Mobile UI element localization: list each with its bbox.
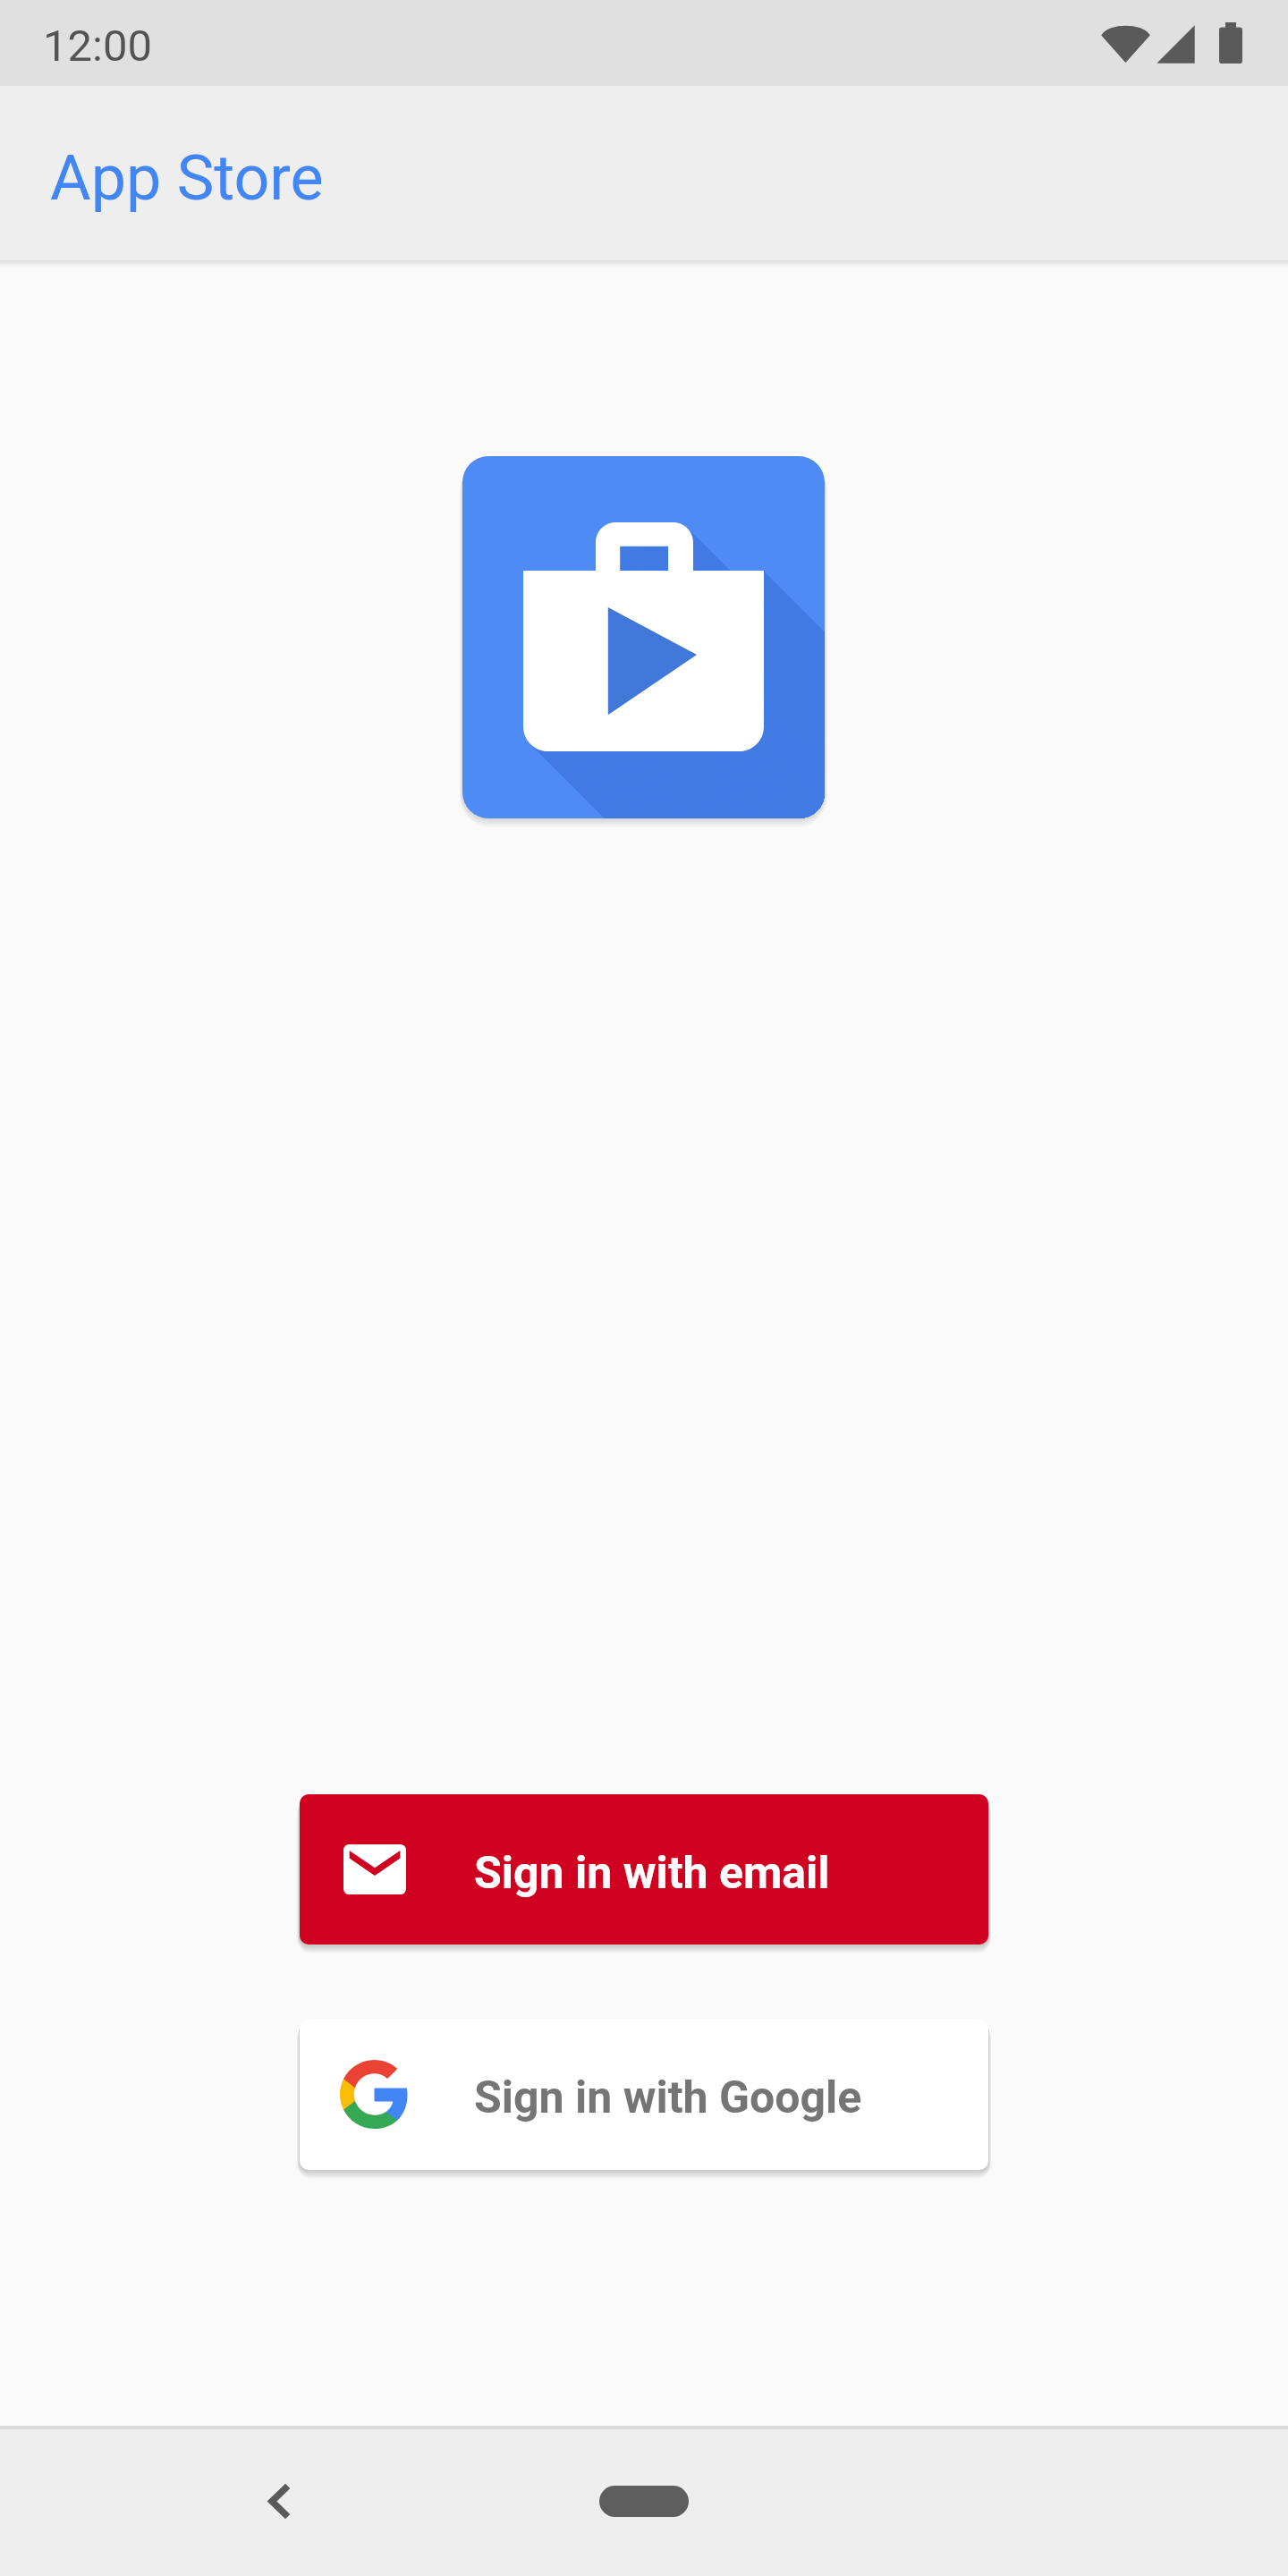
button[interactable]: Home — [568, 2460, 720, 2542]
button[interactable]: Back — [225, 2447, 332, 2555]
staticText: Sign in with Google — [474, 2072, 862, 2124]
staticText: 12:00 — [43, 21, 153, 72]
button[interactable]: Sign in with Google — [300, 2019, 988, 2170]
staticText: App Store — [50, 141, 324, 215]
staticText: Sign in with email — [474, 1847, 830, 1900]
button[interactable]: Sign in with email — [300, 1794, 988, 1945]
